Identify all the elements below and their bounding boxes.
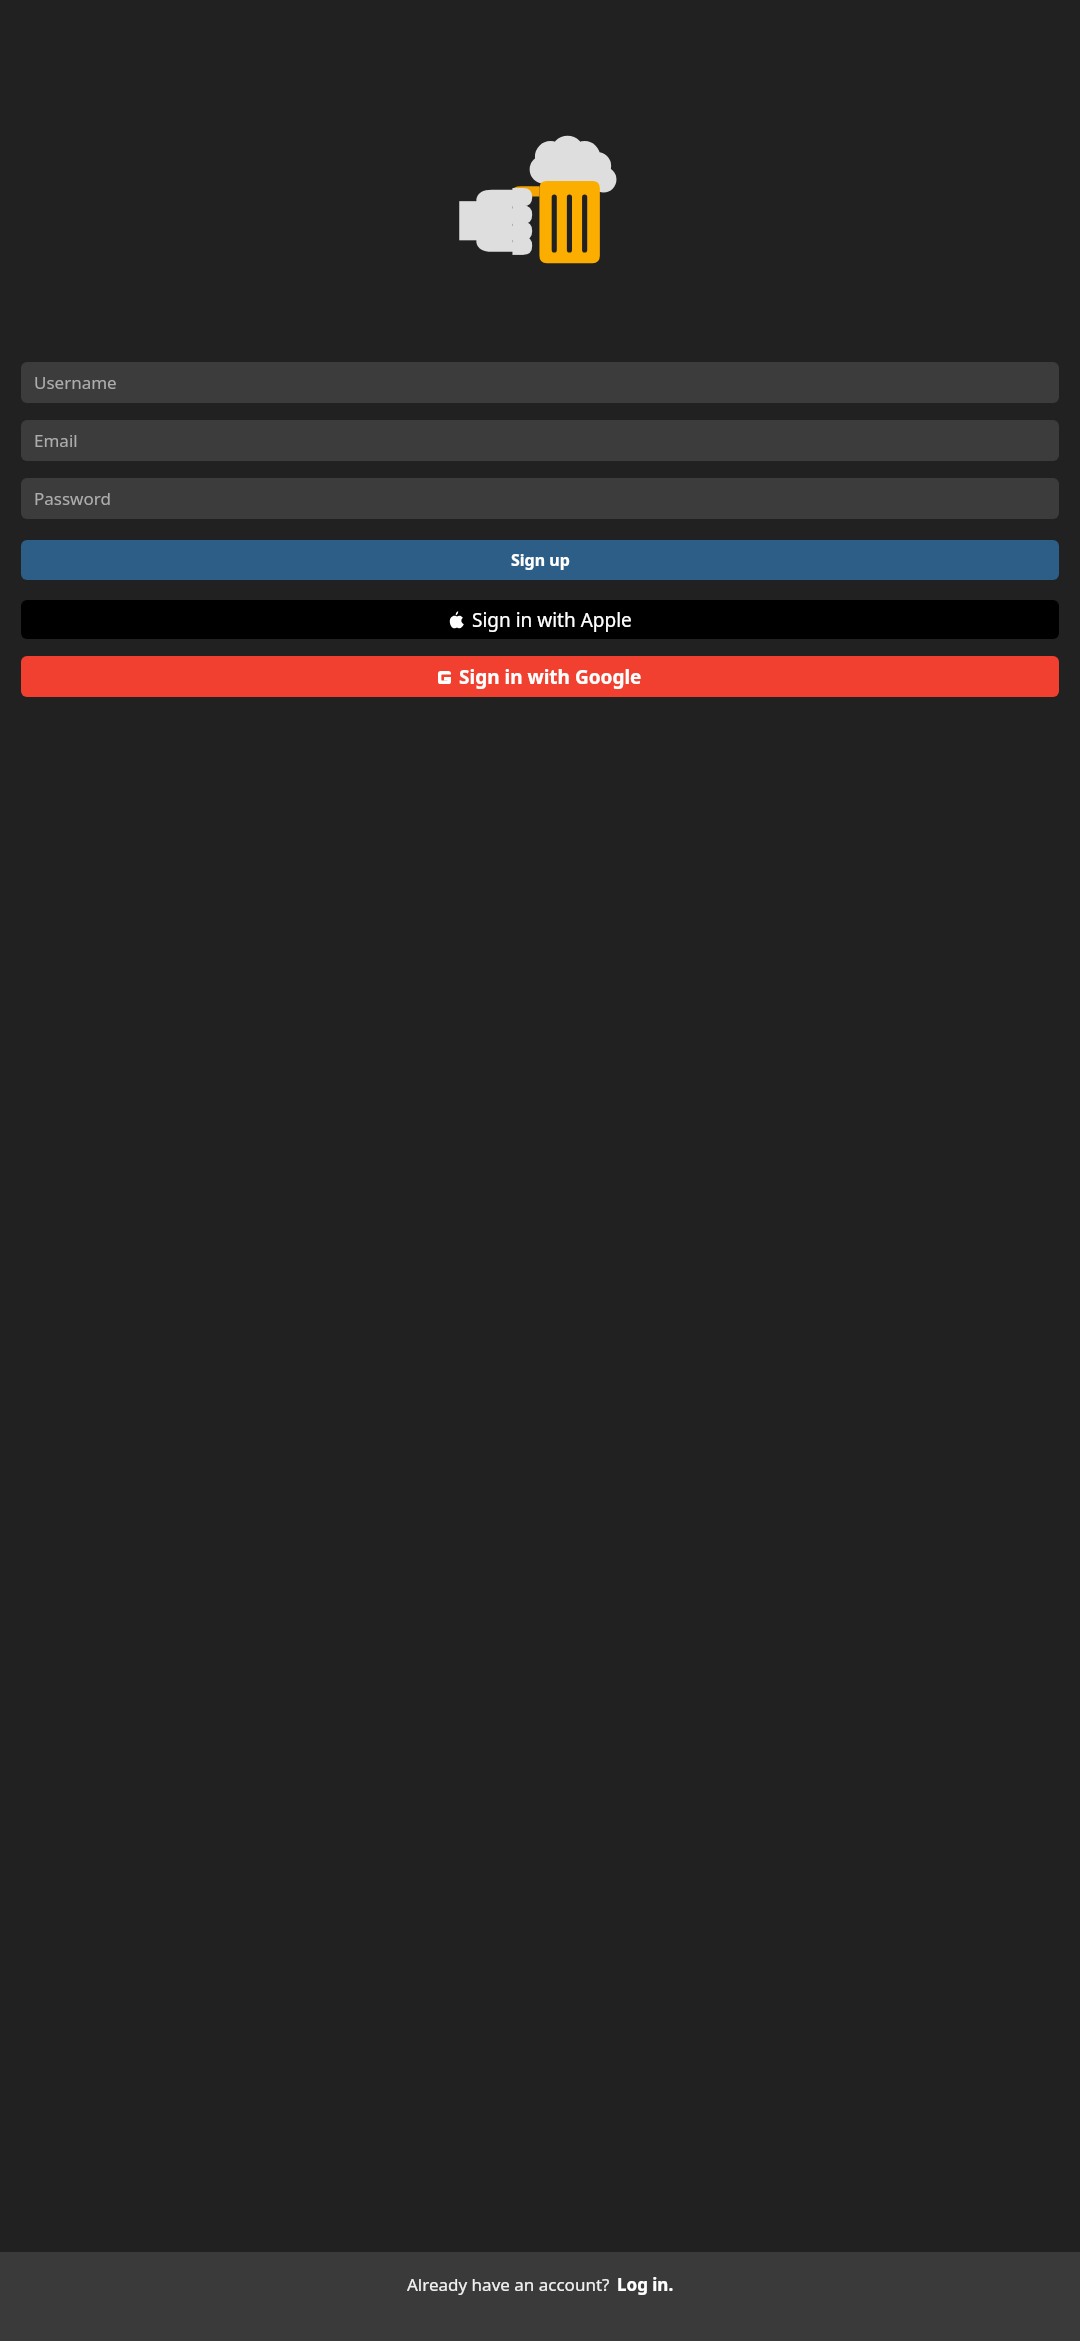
button[interactable]: Email — [21, 420, 1059, 461]
button[interactable]: Sign up — [21, 540, 1059, 580]
button[interactable]: Already have an account? — [407, 2273, 674, 2296]
staticText: Sign in with Google — [459, 664, 642, 690]
other: Apple logo — [448, 611, 466, 629]
staticText: Already have an account? — [407, 2273, 610, 2296]
button[interactable]: Apple logo — [21, 600, 1059, 639]
staticText: Sign up — [511, 549, 570, 571]
staticText: Email — [34, 429, 78, 452]
staticText: Sign in with Apple — [472, 607, 632, 633]
staticText: Username — [34, 371, 117, 394]
staticText: Log in. — [617, 2273, 674, 2296]
button[interactable]: Username — [21, 362, 1059, 403]
other: Google logo — [438, 671, 451, 684]
button[interactable]: Password — [21, 478, 1059, 519]
staticText: Password — [34, 487, 111, 510]
button[interactable]: Google logo — [21, 656, 1059, 697]
